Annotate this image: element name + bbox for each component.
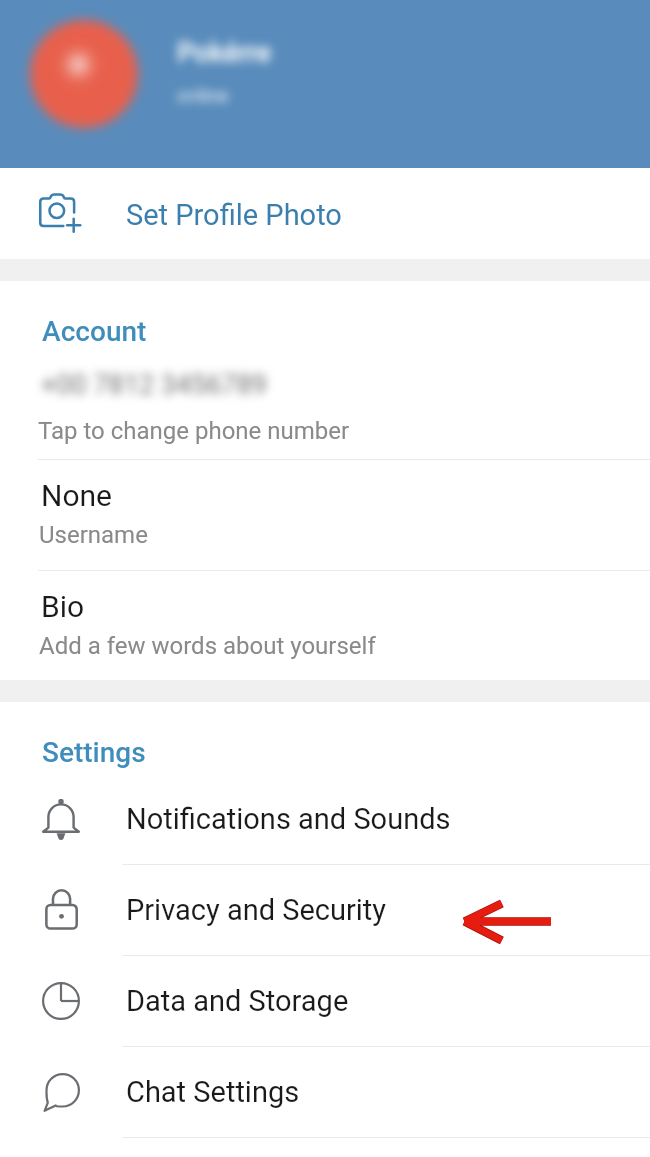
other: Set profile photo — [39, 194, 81, 236]
staticText: Account — [42, 315, 147, 348]
button[interactable]: Data and Storage — [0, 956, 650, 1046]
button[interactable]: None — [0, 460, 650, 570]
staticText: Set Profile Photo — [126, 198, 342, 232]
staticText: Data and Storage — [126, 984, 349, 1018]
button[interactable]: Bio — [0, 571, 650, 681]
button[interactable]: +00 7812 3456789 — [0, 355, 650, 459]
button[interactable]: Chat Settings — [0, 1047, 650, 1137]
staticText: Settings — [42, 736, 146, 769]
staticText: +00 7812 3456789 — [41, 369, 267, 401]
staticText: Chat Settings — [126, 1075, 300, 1109]
staticText: Bio — [41, 589, 85, 624]
button[interactable]: Notifications and Sounds — [0, 774, 650, 864]
staticText: None — [41, 478, 112, 513]
staticText: Username — [39, 521, 148, 549]
staticText: Notifications and Sounds — [126, 802, 451, 836]
button[interactable]: Privacy and Security — [0, 865, 650, 955]
button[interactable]: Set profile photo — [0, 168, 650, 259]
staticText: Privacy and Security — [126, 893, 387, 927]
staticText: Pokérre — [177, 37, 272, 69]
other: Points to Privacy and Security — [460, 898, 555, 944]
staticText: online — [177, 84, 229, 106]
staticText: Add a few words about yourself — [39, 632, 376, 660]
staticText: Tap to change phone number — [38, 417, 350, 445]
